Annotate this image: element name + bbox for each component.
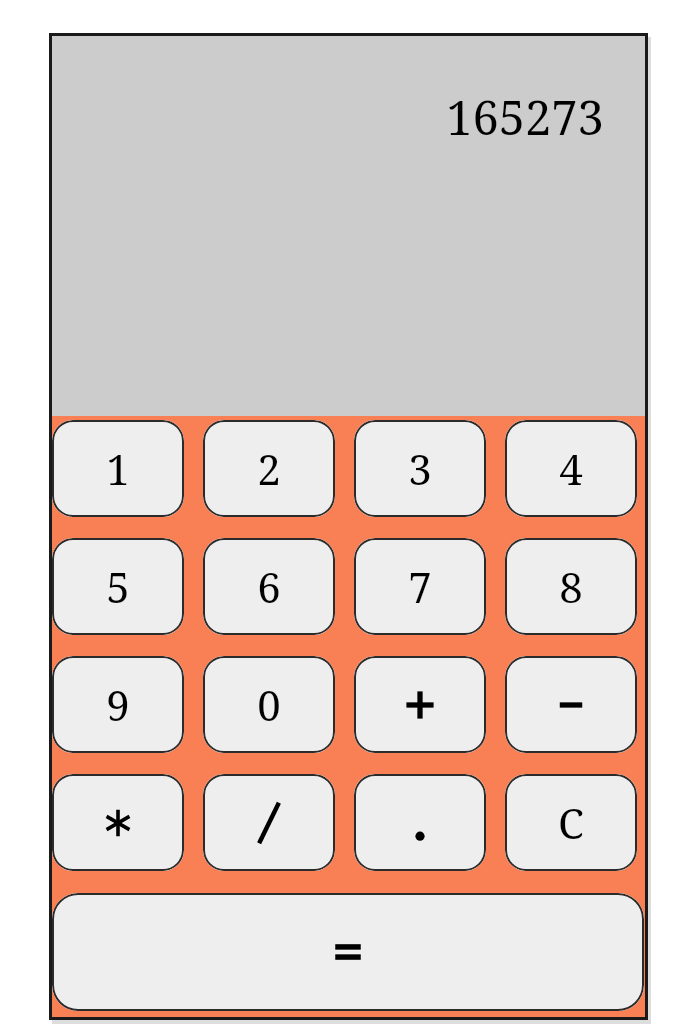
button[interactable]: 5 bbox=[52, 538, 184, 635]
button[interactable] bbox=[354, 656, 486, 753]
button[interactable] bbox=[52, 893, 644, 1011]
button[interactable] bbox=[505, 656, 637, 753]
button[interactable]: 9 bbox=[52, 656, 184, 753]
button[interactable]: 2 bbox=[203, 420, 335, 517]
staticText: 1 bbox=[106, 440, 130, 497]
button[interactable]: 6 bbox=[203, 538, 335, 635]
button[interactable]: 0 bbox=[203, 656, 335, 753]
button[interactable] bbox=[203, 774, 335, 871]
staticText: 9 bbox=[106, 676, 130, 733]
staticText: 2 bbox=[257, 440, 281, 497]
staticText: 7 bbox=[408, 558, 432, 615]
button[interactable]: 4 bbox=[505, 420, 637, 517]
button[interactable] bbox=[52, 774, 184, 871]
button[interactable]: 8 bbox=[505, 538, 637, 635]
staticText: 4 bbox=[559, 440, 583, 497]
staticText: 5 bbox=[106, 558, 130, 615]
button[interactable]: 1 bbox=[52, 420, 184, 517]
button[interactable] bbox=[354, 774, 486, 871]
button[interactable]: C bbox=[505, 774, 637, 871]
staticText: C bbox=[558, 794, 584, 851]
staticText: 165273 bbox=[446, 85, 604, 149]
button[interactable]: 7 bbox=[354, 538, 486, 635]
staticText: 8 bbox=[559, 558, 583, 615]
staticText: 6 bbox=[257, 558, 281, 615]
button[interactable]: 3 bbox=[354, 420, 486, 517]
staticText: 3 bbox=[408, 440, 432, 497]
staticText: 0 bbox=[257, 676, 281, 733]
